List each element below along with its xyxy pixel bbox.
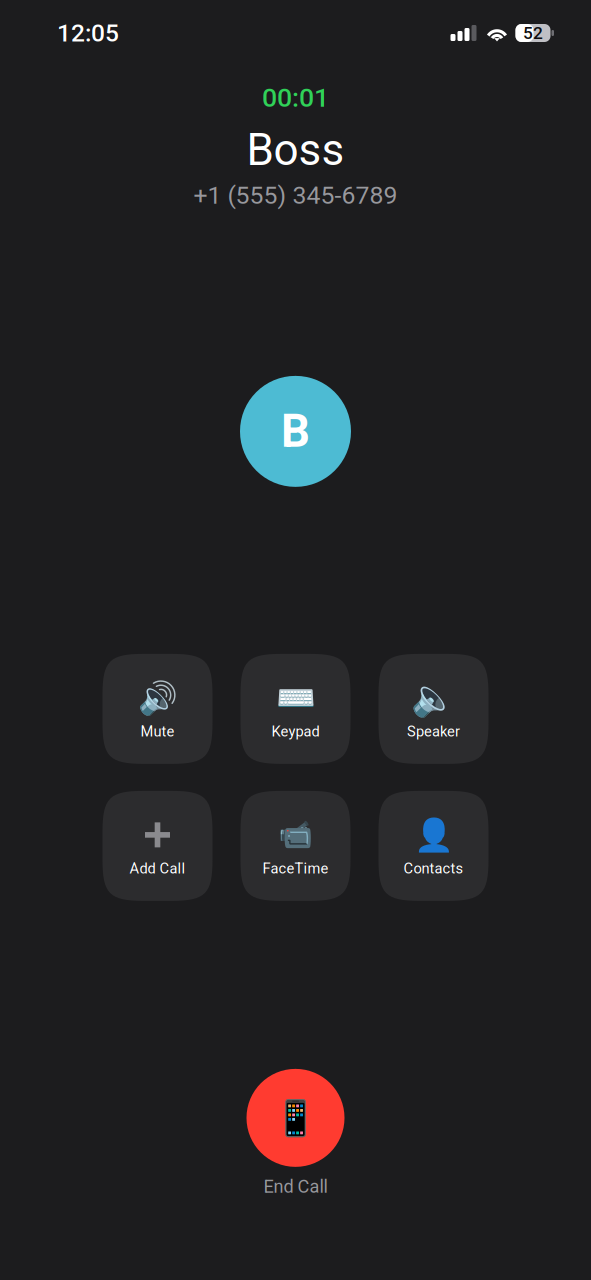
staticText: ⌨️ xyxy=(275,679,315,717)
staticText: Mute xyxy=(140,723,174,740)
staticText: 00:01 xyxy=(262,82,329,113)
staticText: Boss xyxy=(246,124,344,176)
staticText: +1 (555) 345-6789 xyxy=(193,181,397,210)
staticText: FaceTime xyxy=(262,860,328,877)
staticText: 52 xyxy=(523,23,543,43)
staticText: Speaker xyxy=(407,723,460,740)
staticText: Contacts xyxy=(403,860,463,877)
button[interactable]: 🔈 xyxy=(378,654,488,764)
staticText: Add Call xyxy=(129,860,185,877)
staticText: 👤 xyxy=(413,816,453,854)
staticText: 📹 xyxy=(278,818,313,851)
button[interactable]: 📱 xyxy=(246,1069,344,1197)
staticText: Keypad xyxy=(271,723,319,740)
button[interactable]: 📹 xyxy=(240,791,350,901)
button[interactable]: 🔊 xyxy=(102,654,212,764)
staticText: 🔈 xyxy=(411,677,456,719)
staticText: End Call xyxy=(263,1176,327,1197)
staticText: 🔊 xyxy=(137,679,177,717)
button[interactable]: 👤 xyxy=(378,791,488,901)
staticText: 📱 xyxy=(274,1098,317,1138)
staticText: B xyxy=(281,405,310,458)
staticText: 12:05 xyxy=(57,19,119,47)
button[interactable]: Add Call xyxy=(102,791,212,901)
button[interactable]: ⌨️ xyxy=(240,654,350,764)
